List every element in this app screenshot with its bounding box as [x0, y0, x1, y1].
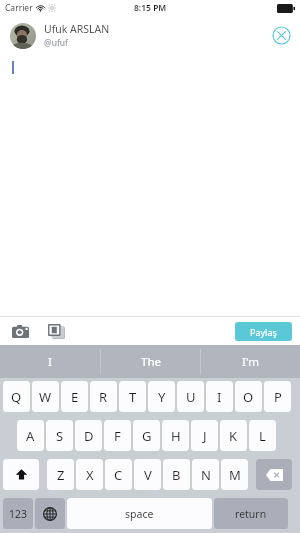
button[interactable]: K	[220, 420, 247, 451]
staticText: Y	[158, 388, 166, 406]
staticText: J	[203, 427, 207, 445]
staticText: W	[39, 388, 52, 406]
button[interactable]: E	[61, 381, 88, 412]
staticText: V	[144, 466, 152, 484]
button[interactable]: X	[76, 459, 103, 490]
button[interactable]: P	[264, 381, 291, 412]
button[interactable]: A	[17, 420, 44, 451]
staticText: space	[125, 507, 154, 521]
staticText: X	[86, 466, 94, 484]
staticText: C	[114, 466, 123, 484]
button[interactable]: Key	[256, 459, 292, 490]
button[interactable]: I	[206, 381, 233, 412]
button[interactable]: I'm	[201, 345, 300, 378]
button[interactable]: W	[32, 381, 59, 412]
staticText: R	[99, 388, 108, 406]
button[interactable]: J	[191, 420, 218, 451]
staticText: I'm	[242, 354, 259, 370]
button[interactable]: Y	[148, 381, 175, 412]
staticText: N	[201, 466, 211, 484]
button[interactable]: F	[104, 420, 131, 451]
staticText: S	[56, 427, 64, 445]
staticText: I	[217, 388, 222, 406]
staticText: The	[141, 354, 161, 370]
staticText: M	[229, 466, 241, 484]
staticText: Z	[57, 466, 65, 484]
button[interactable]: Camera	[9, 320, 31, 342]
staticText: @ufuf	[44, 37, 68, 49]
button[interactable]: 123	[3, 498, 33, 529]
button[interactable]: R	[90, 381, 117, 412]
staticText: L	[259, 427, 266, 445]
staticText: return	[235, 507, 267, 521]
button[interactable]: T	[119, 381, 146, 412]
staticText: F	[114, 427, 121, 445]
staticText: P	[274, 388, 282, 406]
staticText: A	[26, 427, 35, 445]
staticText: B	[172, 466, 181, 484]
staticText: K	[229, 427, 238, 445]
staticText: G	[142, 427, 152, 445]
button[interactable]: H	[162, 420, 189, 451]
button[interactable]: D	[75, 420, 102, 451]
button[interactable]: Photos	[45, 320, 67, 342]
button[interactable]: I	[0, 345, 100, 378]
button[interactable]: C	[105, 459, 132, 490]
button[interactable]: Paylaş	[235, 322, 292, 341]
button[interactable]: N	[192, 459, 219, 490]
staticText: O	[243, 388, 254, 406]
button[interactable]: Q	[3, 381, 30, 412]
staticText: 123	[9, 507, 28, 521]
button[interactable]: B	[163, 459, 190, 490]
button[interactable]: V	[134, 459, 161, 490]
staticText: 8:15 PM	[134, 2, 167, 14]
button[interactable]: O	[235, 381, 262, 412]
button[interactable]: Key	[3, 459, 39, 490]
button[interactable]: Close	[270, 24, 292, 46]
staticText: I	[48, 354, 52, 370]
button[interactable]: space	[67, 498, 212, 529]
button[interactable]: U	[177, 381, 204, 412]
staticText: H	[171, 427, 181, 445]
button[interactable]: Z	[47, 459, 74, 490]
button[interactable]: M	[221, 459, 248, 490]
staticText: Q	[11, 388, 22, 406]
staticText: Ufuk ARSLAN	[44, 22, 110, 36]
button[interactable]: return	[214, 498, 288, 529]
button[interactable]: Key	[35, 498, 65, 529]
staticText: T	[129, 388, 137, 406]
staticText: Carrier	[5, 2, 33, 14]
staticText: U	[186, 388, 196, 406]
staticText: D	[84, 427, 94, 445]
button[interactable]: G	[133, 420, 160, 451]
button[interactable]: S	[46, 420, 73, 451]
button[interactable]: L	[249, 420, 276, 451]
staticText: Paylaş	[250, 326, 277, 338]
button[interactable]: The	[101, 345, 200, 378]
staticText: E	[71, 388, 79, 406]
